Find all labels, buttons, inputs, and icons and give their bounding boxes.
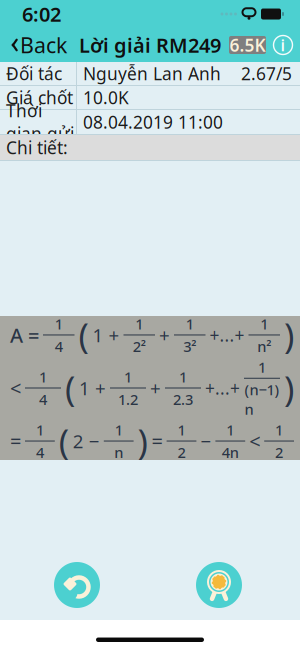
staticText: (	[59, 418, 69, 464]
staticText: )	[284, 365, 294, 411]
staticText: 1	[39, 367, 47, 386]
staticText: 08.04.2019 11:00	[83, 110, 223, 133]
button[interactable]: Back	[0, 28, 75, 62]
staticText: 4	[39, 389, 47, 409]
staticText: 2.67/5	[241, 62, 292, 85]
staticText: n²	[257, 336, 271, 356]
staticText: Lời giải RM249	[79, 32, 221, 58]
staticText: )	[138, 418, 148, 464]
staticText: =	[152, 428, 163, 454]
staticText: −	[200, 429, 211, 453]
staticText: 2 −	[73, 429, 100, 453]
staticText: 1	[135, 314, 143, 333]
staticText: Back	[20, 31, 67, 59]
staticText: 1	[124, 367, 132, 386]
staticText: 1	[179, 367, 187, 386]
staticText: 1 +	[79, 376, 106, 400]
staticText: A =	[10, 322, 39, 348]
staticText: i	[280, 34, 285, 56]
staticText: 1	[260, 314, 268, 333]
staticText: 4	[36, 442, 44, 462]
staticText: +...+	[205, 376, 240, 399]
staticText: 3²	[183, 336, 196, 356]
button[interactable]: 6.5K points	[229, 36, 266, 54]
staticText: 10.0K	[83, 86, 129, 109]
staticText: 1	[55, 314, 63, 333]
staticText: 6.5K	[229, 33, 265, 56]
staticText: 1	[177, 420, 185, 440]
staticText: Nguyễn Lan Anh	[83, 62, 221, 85]
staticText: +	[150, 376, 161, 400]
staticText: <	[10, 375, 21, 401]
button[interactable]: Undo	[54, 562, 100, 608]
button[interactable]: Information	[266, 28, 300, 62]
staticText: =	[10, 428, 21, 454]
staticText: 1	[186, 314, 194, 333]
staticText: <	[249, 428, 260, 454]
staticText: 2²	[133, 336, 146, 356]
staticText: Thời gian gửi	[6, 99, 74, 145]
staticText: (n−1)n	[244, 380, 279, 419]
staticText: n	[114, 442, 123, 462]
staticText: Đối tác	[6, 62, 62, 85]
staticText: +...+	[209, 323, 244, 346]
staticText: 1	[36, 420, 44, 440]
staticText: Giá chốt	[6, 86, 73, 109]
staticText: (	[65, 365, 75, 411]
staticText: 1.2	[118, 389, 138, 409]
staticText: 4	[55, 336, 63, 356]
staticText: 4n	[222, 442, 239, 462]
staticText: 2	[177, 442, 185, 462]
button[interactable]: Award best answer	[196, 562, 242, 608]
staticText: (	[78, 312, 88, 358]
staticText: +	[159, 323, 170, 347]
staticText: 2	[275, 442, 283, 462]
staticText: )	[284, 312, 294, 358]
staticText: 2.3	[173, 389, 193, 409]
staticText: Chi tiết:	[6, 136, 68, 159]
staticText: 6:02	[22, 1, 61, 27]
staticText: 1	[226, 420, 234, 440]
staticText: 1	[258, 357, 266, 377]
staticText: 1 +	[92, 323, 119, 347]
staticText: 1	[275, 420, 283, 440]
staticText: 1	[115, 420, 123, 440]
